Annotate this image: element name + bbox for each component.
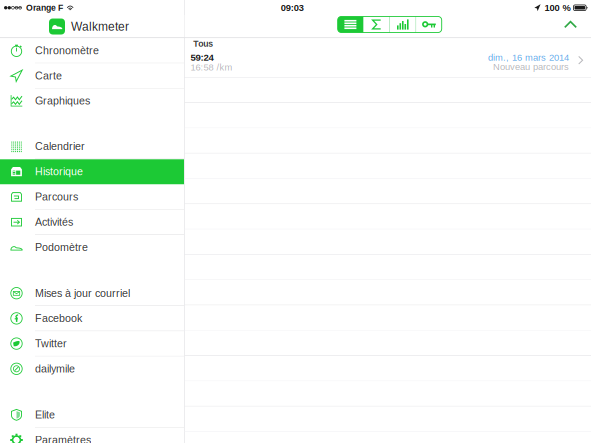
button[interactable]: Mises à jour courriel (0, 281, 184, 306)
staticText: Paramètres (35, 434, 91, 443)
staticText: Podomètre (35, 241, 88, 253)
button[interactable]: Activités (0, 210, 184, 235)
button[interactable]: Tous (185, 38, 591, 78)
button[interactable]: Carte (0, 63, 184, 89)
staticText: dailymile (35, 363, 75, 375)
staticText: Activités (35, 216, 73, 228)
button[interactable]: Historique (0, 159, 184, 184)
staticText: Orange F (26, 3, 63, 13)
button[interactable]: Réduire (557, 14, 583, 35)
staticText: Facebook (35, 312, 82, 324)
button[interactable]: Podomètre (0, 235, 184, 260)
button[interactable]: Calendrier (0, 134, 184, 159)
button[interactable]: Chronomètre (0, 38, 184, 63)
staticText: Calendrier (35, 140, 85, 152)
button[interactable]: Graphiques (0, 89, 184, 114)
staticText: Parcours (35, 191, 78, 203)
staticText: Chronomètre (35, 44, 99, 56)
button[interactable]: Graphiques (390, 16, 415, 32)
staticText: Mises à jour courriel (35, 287, 130, 299)
staticText: Tous (193, 39, 213, 48)
staticText: Twitter (35, 338, 67, 349)
button[interactable]: Clé (416, 16, 442, 32)
staticText: dim., 16 mars 2014 (488, 52, 569, 63)
staticText: Graphiques (35, 95, 90, 107)
button[interactable]: Facebook (0, 306, 184, 331)
staticText: 59:24 (190, 52, 213, 63)
button[interactable]: Twitter (0, 331, 184, 356)
staticText: Walkmeter (71, 20, 129, 33)
button[interactable]: Elite (0, 402, 184, 428)
button[interactable]: Paramètres (0, 428, 184, 443)
button[interactable]: dailymile (0, 356, 184, 382)
staticText: Nouveau parcours (493, 62, 569, 72)
staticText: 16:58 /km (190, 62, 232, 72)
staticText: 09:03 (281, 2, 304, 13)
button[interactable]: Résumé (364, 16, 389, 32)
staticText: Elite (35, 409, 55, 421)
staticText: Historique (35, 166, 83, 177)
staticText: 100 % (544, 2, 570, 13)
button[interactable]: Parcours (0, 184, 184, 210)
button[interactable]: Liste (338, 16, 363, 32)
staticText: Carte (35, 70, 62, 82)
